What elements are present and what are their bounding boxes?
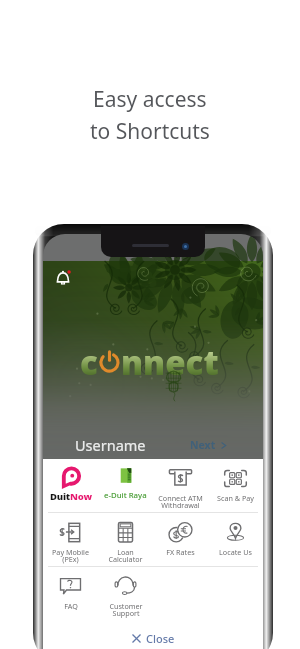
button[interactable]: Duit <box>43 459 98 512</box>
button[interactable]: FAQ <box>43 567 98 620</box>
button[interactable]: Notifications <box>55 270 71 286</box>
staticText: Username <box>75 435 146 455</box>
staticText: Easy access <box>93 85 207 114</box>
staticText: FX Rates <box>166 547 195 557</box>
staticText: c <box>80 340 98 385</box>
staticText: Locate Us <box>219 547 252 557</box>
staticText: nnect <box>121 340 219 385</box>
staticText: e-Duit Raya <box>104 490 147 501</box>
staticText: Pay Mobile (PEx) <box>52 547 89 564</box>
button[interactable]: Customer Support <box>98 567 153 620</box>
button[interactable]: Locate Us <box>208 513 263 566</box>
button[interactable]: e-Duit Raya <box>98 459 153 512</box>
staticText: Connect ATM Withdrawal <box>158 493 203 510</box>
button[interactable]: Pay Mobile (PEx) <box>43 513 98 566</box>
staticText: Duit <box>50 490 70 503</box>
button[interactable]: Next <box>190 438 227 452</box>
staticText: Next <box>190 438 216 452</box>
staticText: Scan & Pay <box>217 493 254 503</box>
button[interactable]: Loan Calculator <box>98 513 153 566</box>
staticText: Now <box>70 490 92 503</box>
button[interactable]: Close <box>43 627 263 649</box>
staticText: Loan Calculator <box>108 547 143 564</box>
staticText: FAQ <box>64 601 78 611</box>
staticText: Customer Support <box>109 601 143 618</box>
staticText: to Shortcuts <box>90 117 210 146</box>
button[interactable]: Scan & Pay <box>208 459 263 512</box>
button[interactable]: Connect ATM Withdrawal <box>153 459 208 512</box>
button[interactable]: FX Rates <box>153 513 208 566</box>
staticText: Close <box>146 631 175 646</box>
